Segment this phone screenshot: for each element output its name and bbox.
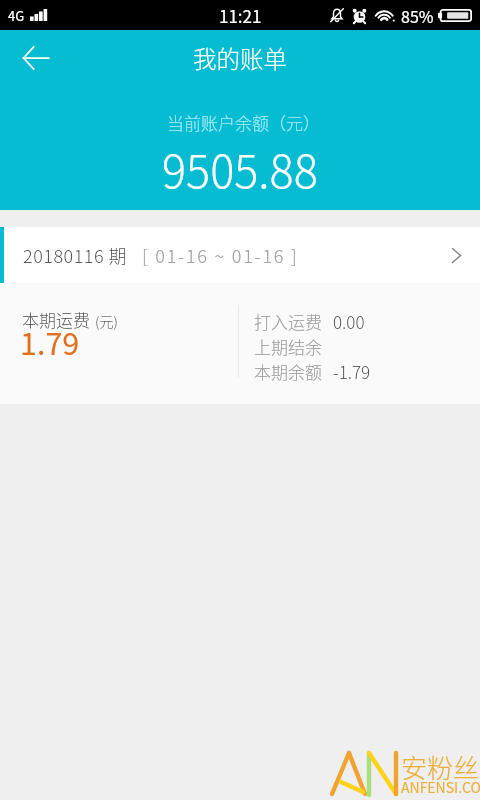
staticText: 1.79 <box>20 320 80 364</box>
staticText: 打入运费 <box>254 309 322 334</box>
staticText: 85% <box>401 4 434 27</box>
button[interactable]: Back <box>12 34 60 82</box>
staticText: 9505.88 <box>162 136 318 201</box>
staticText: 20180116 期 <box>23 242 128 268</box>
staticText: 0.00 <box>333 309 365 334</box>
staticText: ANFENSI.COM <box>401 777 480 797</box>
staticText: 上期结余 <box>254 334 322 359</box>
staticText: (元) <box>95 311 118 331</box>
staticText: 11:21 <box>219 3 262 28</box>
staticText: 本期余额 <box>254 359 322 384</box>
staticText: 安粉丝 <box>401 748 480 786</box>
staticText: [ 01-16 ~ 01-16 ] <box>142 242 299 268</box>
staticText: 我的账单 <box>193 41 287 75</box>
staticText: -1.79 <box>333 359 371 384</box>
button[interactable]: 20180116 期 <box>0 227 480 283</box>
staticText: 4G <box>8 6 25 25</box>
staticText: 当前账户余额（元） <box>167 110 320 135</box>
staticText: 本期运费 <box>22 307 90 332</box>
